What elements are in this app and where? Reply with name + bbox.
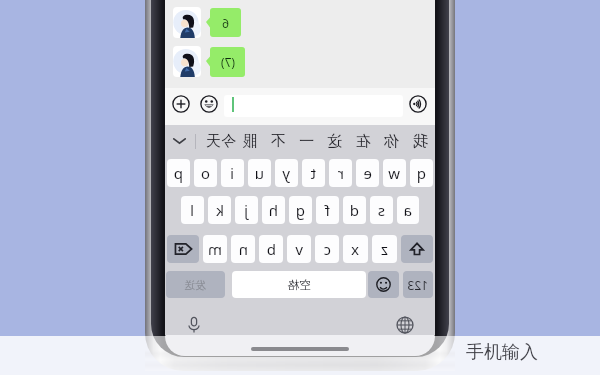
button[interactable]: k (208, 196, 231, 224)
staticText: 眼 (242, 132, 257, 151)
button[interactable]: Emoji (368, 271, 399, 298)
staticText: x (351, 239, 359, 259)
button[interactable]: l (181, 196, 204, 224)
staticText: 手机输入 (466, 341, 538, 364)
button[interactable]: z (372, 235, 397, 263)
button[interactable]: 眼 (241, 125, 259, 157)
button[interactable]: 发送 (166, 271, 225, 298)
staticText: b (266, 239, 276, 259)
staticText: r (337, 163, 344, 183)
staticText: 这 (327, 132, 342, 151)
staticText: g (295, 200, 305, 220)
button[interactable]: Voice input (409, 95, 427, 113)
staticText: a (403, 200, 412, 220)
staticText: 一 (299, 132, 314, 151)
staticText: w (388, 163, 400, 183)
staticText: c (323, 239, 331, 259)
staticText: y (282, 163, 290, 183)
button[interactable]: 我 (412, 125, 430, 157)
button[interactable]: Backspace (167, 235, 199, 263)
staticText: 你 (384, 132, 399, 151)
staticText: 6 (222, 15, 229, 31)
staticText: n (238, 239, 248, 259)
staticText: o (200, 163, 210, 183)
button[interactable]: f (316, 196, 339, 224)
button[interactable]: m (203, 235, 227, 263)
button[interactable]: Shift (401, 235, 433, 263)
button[interactable]: 在 (355, 125, 373, 157)
staticText: u (254, 163, 264, 183)
staticText: v (295, 239, 303, 259)
staticText: j (244, 200, 248, 220)
button[interactable]: t (302, 159, 325, 187)
staticText: 发送 (184, 278, 206, 292)
staticText: l (190, 200, 194, 220)
button[interactable]: s (370, 196, 393, 224)
staticText: 不 (270, 132, 285, 151)
button[interactable]: q (410, 159, 433, 187)
staticText: s (377, 200, 385, 220)
button[interactable]: 今天 (205, 125, 237, 157)
staticText: k (215, 200, 224, 220)
staticText: m (207, 239, 222, 259)
button[interactable]: 不 (269, 125, 287, 157)
button[interactable]: d (343, 196, 366, 224)
staticText: q (416, 163, 426, 183)
staticText: t (310, 163, 316, 183)
staticText: h (268, 200, 278, 220)
button[interactable]: i (221, 159, 244, 187)
button[interactable]: j (235, 196, 258, 224)
button[interactable]: 空格 (232, 271, 366, 298)
button[interactable]: v (287, 235, 311, 263)
button[interactable] (224, 95, 403, 117)
button[interactable]: p (167, 159, 190, 187)
button[interactable]: 123 (403, 271, 433, 298)
button[interactable]: Avatar (173, 7, 201, 38)
button[interactable]: a (397, 196, 419, 224)
button[interactable]: More (172, 95, 190, 113)
button[interactable]: Emoji (200, 95, 218, 113)
button[interactable]: b (259, 235, 283, 263)
staticText: (7) (220, 54, 235, 70)
staticText: 空格 (287, 277, 311, 292)
staticText: z (380, 239, 388, 259)
staticText: i (230, 163, 234, 183)
button[interactable]: r (329, 159, 352, 187)
button[interactable]: w (383, 159, 406, 187)
button[interactable]: 你 (383, 125, 401, 157)
button[interactable]: 这 (326, 125, 344, 157)
button[interactable]: 6 (210, 8, 241, 37)
button[interactable]: n (231, 235, 255, 263)
staticText: e (363, 163, 372, 183)
button[interactable]: Avatar (173, 46, 201, 77)
button[interactable]: Microphone (185, 316, 203, 334)
button[interactable]: c (315, 235, 339, 263)
staticText: d (349, 200, 359, 220)
staticText: p (173, 163, 183, 183)
button[interactable]: u (248, 159, 271, 187)
button[interactable]: h (262, 196, 285, 224)
button[interactable]: Change language (396, 316, 414, 334)
button[interactable]: y (275, 159, 298, 187)
staticText: 123 (407, 277, 428, 293)
staticText: 今天 (206, 132, 236, 151)
button[interactable]: Hide keyboard (165, 125, 195, 157)
button[interactable]: o (194, 159, 217, 187)
button[interactable]: e (356, 159, 379, 187)
staticText: 在 (356, 132, 371, 151)
button[interactable]: (7) (210, 47, 245, 77)
staticText: 我 (413, 132, 428, 151)
staticText: f (324, 200, 330, 220)
button[interactable]: g (289, 196, 312, 224)
button[interactable]: 一 (298, 125, 316, 157)
button[interactable]: x (343, 235, 368, 263)
